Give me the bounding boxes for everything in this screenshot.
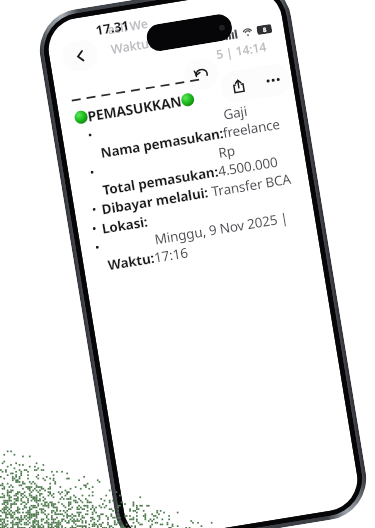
- button[interactable]: Back: [60, 37, 100, 74]
- button[interactable]: Share: [218, 67, 258, 105]
- staticText: 5 | 14:14: [215, 38, 268, 62]
- staticText: Nama pemasukan:: [99, 124, 224, 162]
- staticText: Dibayar melalui:: [100, 183, 210, 218]
- staticText: Gaji freelance: [219, 95, 293, 142]
- button[interactable]: Total pemasukan:: [82, 132, 298, 202]
- staticText: Waktu: Ju: [110, 32, 169, 58]
- staticText: asi: We: [106, 15, 149, 37]
- staticText: Minggu, 9 Nov 2025 | 17:16: [150, 206, 311, 267]
- button[interactable]: Dibayar melalui:: [88, 170, 293, 220]
- button[interactable]: Undo: [182, 56, 221, 92]
- button[interactable]: PEMASUKKAN: [73, 89, 196, 128]
- staticText: 8: [262, 26, 267, 34]
- staticText: ot r: [204, 29, 223, 46]
- staticText: Lokasi:: [100, 213, 149, 238]
- staticText: Total pemasukan:: [101, 162, 220, 199]
- button[interactable]: Waktu:: [95, 206, 311, 276]
- staticText: 17.31: [94, 16, 131, 39]
- button[interactable]: Lokasi:: [92, 213, 149, 239]
- staticText: Waktu:: [106, 249, 156, 274]
- button[interactable]: Nama pemasukan:: [76, 95, 292, 165]
- staticText: PEMASUKKAN: [86, 91, 183, 126]
- staticText: Transfer BCA: [207, 170, 293, 201]
- button[interactable]: More options: [253, 62, 292, 99]
- staticText: Rp 4.500.000: [214, 132, 299, 180]
